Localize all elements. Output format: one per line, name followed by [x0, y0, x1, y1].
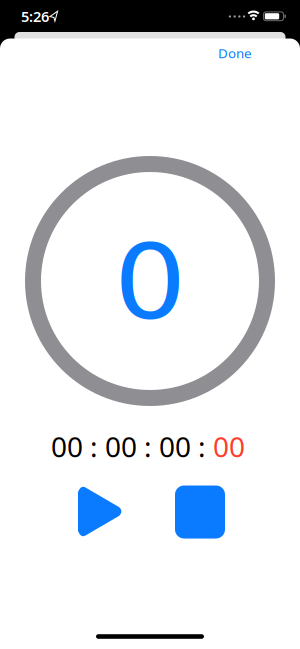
staticText: 00 [51, 428, 83, 465]
staticText: Done [218, 44, 252, 62]
button[interactable]: Done [218, 44, 252, 62]
staticText: 00 [213, 428, 245, 465]
staticText: : [198, 428, 206, 465]
staticText: 00 [105, 428, 137, 465]
staticText: 5:26 [21, 7, 49, 26]
staticText: 0 [117, 222, 183, 343]
button[interactable] [78, 486, 122, 537]
button[interactable] [175, 485, 225, 538]
staticText: : [90, 428, 98, 465]
staticText: 00 [159, 428, 191, 465]
staticText: : [144, 428, 152, 465]
